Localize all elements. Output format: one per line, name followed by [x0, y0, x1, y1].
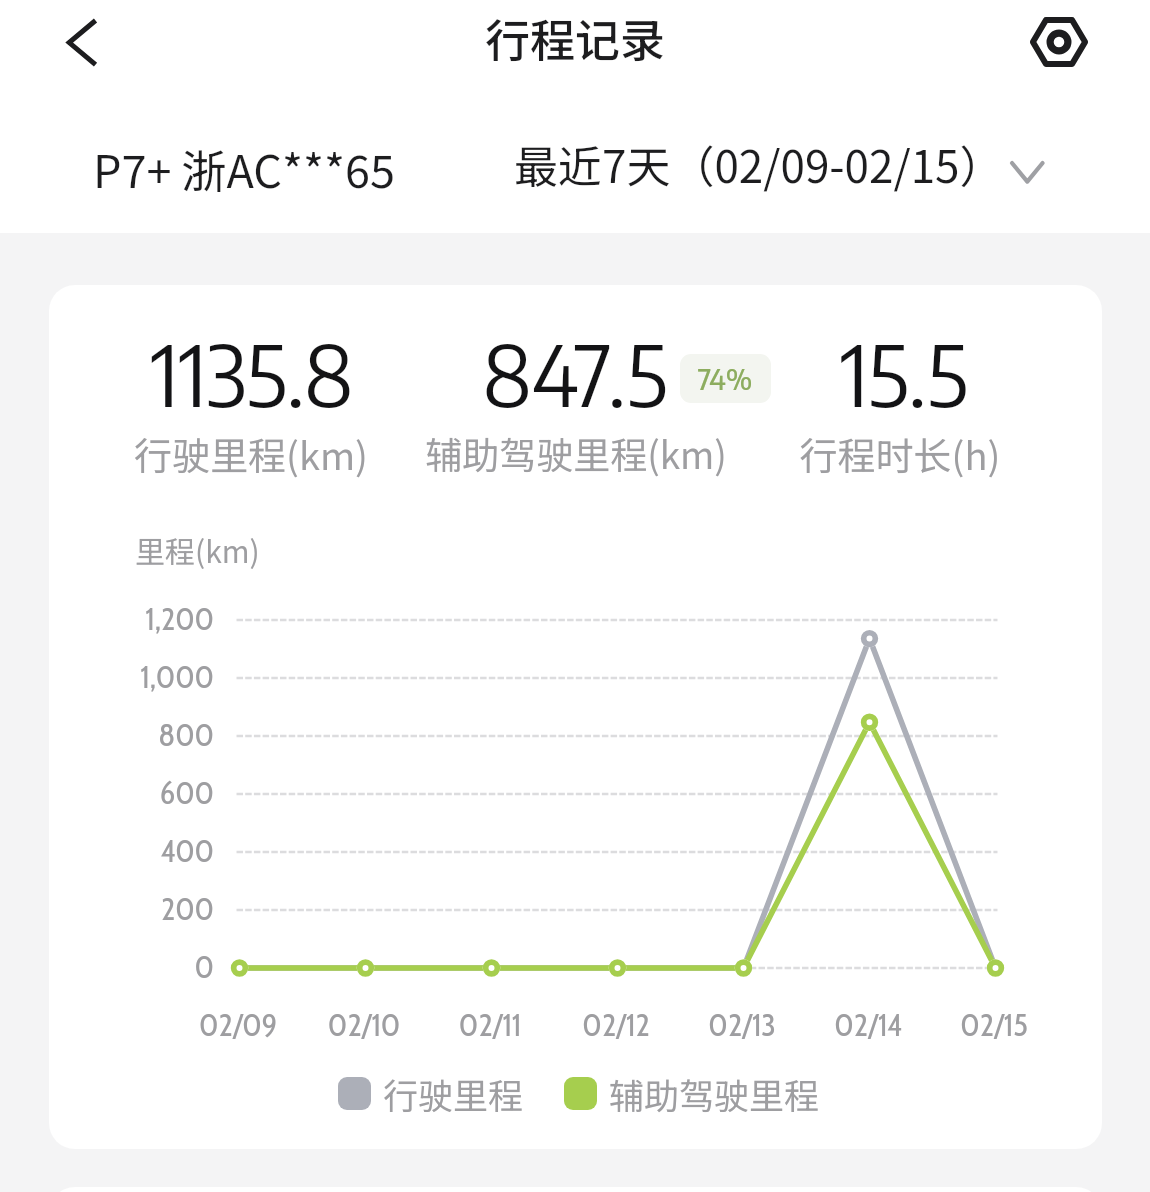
- staticText: 1135.8: [49, 320, 472, 425]
- staticText: 02/12: [516, 1005, 716, 1044]
- staticText: 74%: [698, 360, 753, 396]
- staticText: 1,000: [49, 657, 214, 696]
- staticText: 02/09: [138, 1005, 338, 1044]
- staticText: 行驶里程: [383, 1068, 524, 1119]
- button[interactable]: Back: [42, 2, 122, 82]
- staticText: 02/11: [390, 1005, 590, 1044]
- staticText: 辅助驾驶里程: [609, 1068, 820, 1119]
- staticText: 02/10: [264, 1005, 464, 1044]
- staticText: 600: [49, 773, 214, 812]
- staticText: 02/14: [768, 1005, 968, 1044]
- staticText: 行程时长(h): [680, 426, 1102, 481]
- staticText: 1,200: [49, 599, 214, 638]
- staticText: 15.5: [684, 320, 1102, 425]
- staticText: 200: [49, 889, 214, 928]
- staticText: 最近7天（02/09-02/15）: [514, 132, 1004, 196]
- staticText: 847.5: [355, 320, 795, 425]
- staticText: 02/15: [894, 1005, 1094, 1044]
- staticText: 行程记录: [275, 5, 875, 70]
- staticText: 辅助驾驶里程(km): [356, 426, 796, 480]
- staticText: 0: [49, 947, 214, 986]
- staticText: 02/13: [642, 1005, 842, 1044]
- button[interactable]: Settings: [1019, 2, 1099, 82]
- button[interactable]: 最近7天（02/09-02/15）: [505, 126, 1065, 198]
- staticText: P7+ 浙AC***65: [93, 136, 395, 201]
- staticText: 行驶里程(km): [49, 426, 471, 481]
- staticText: 800: [49, 715, 214, 754]
- staticText: 400: [49, 831, 214, 870]
- staticText: 里程(km): [135, 528, 260, 571]
- button[interactable]: P7+ 浙AC***65: [84, 126, 404, 198]
